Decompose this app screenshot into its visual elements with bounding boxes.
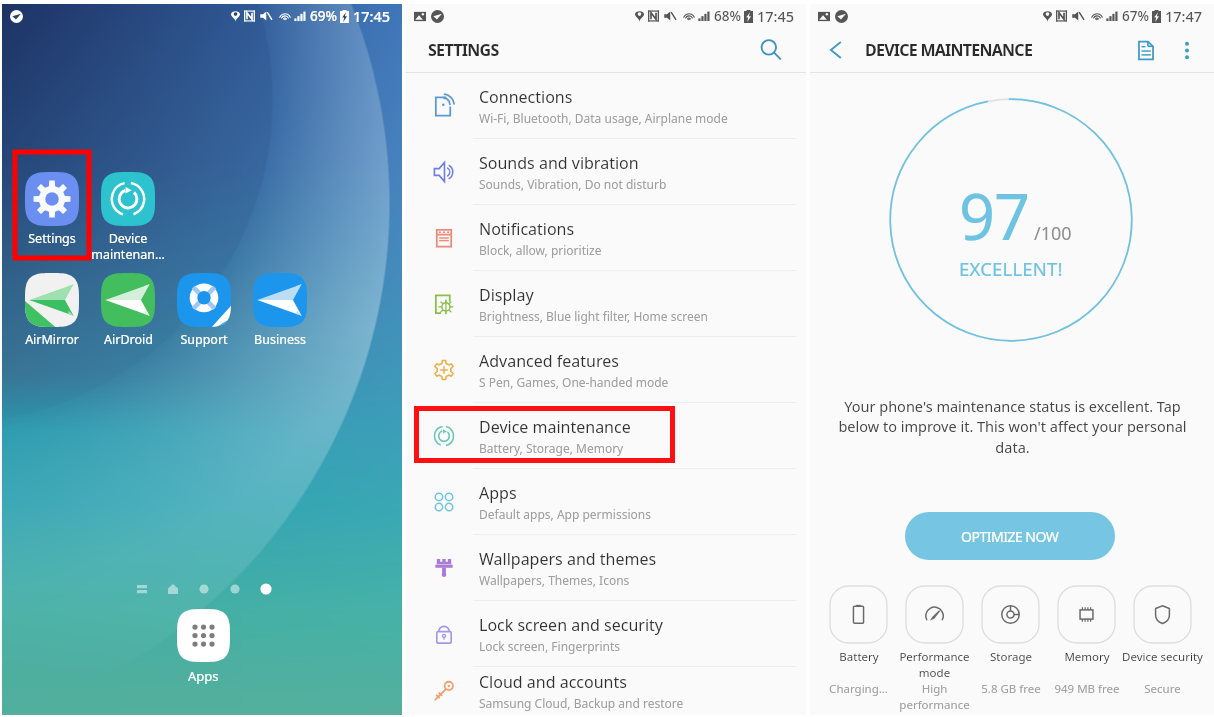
- staticText: 5.8 GB free: [981, 681, 1041, 697]
- staticText: 17:47: [1165, 6, 1203, 26]
- button[interactable]: Device security: [1121, 586, 1204, 697]
- staticText: Support: [180, 331, 228, 348]
- staticText: Notifications: [479, 218, 575, 240]
- button[interactable]: Storage: [969, 586, 1052, 697]
- button[interactable]: Apps: [177, 609, 230, 662]
- button[interactable]: Back: [819, 34, 851, 66]
- button[interactable]: Report: [1129, 33, 1163, 67]
- staticText: Battery: [839, 649, 879, 665]
- staticText: Wallpapers, Themes, Icons: [479, 572, 630, 588]
- button[interactable]: Connections: [406, 73, 806, 138]
- staticText: Battery, Storage, Memory: [479, 440, 624, 456]
- staticText: Wi-Fi, Bluetooth, Data usage, Airplane m…: [479, 110, 728, 126]
- staticText: Storage: [990, 649, 1032, 665]
- button[interactable]: Apps: [406, 469, 806, 534]
- button[interactable]: Battery: [817, 586, 900, 697]
- button[interactable]: Display: [406, 271, 806, 336]
- button[interactable]: OPTIMIZE NOW: [905, 512, 1115, 560]
- staticText: Sounds, Vibration, Do not disturb: [479, 176, 667, 192]
- staticText: Device maintenance: [479, 416, 631, 438]
- staticText: Business: [254, 331, 306, 348]
- button[interactable]: Device maintenan…: [90, 172, 166, 262]
- button[interactable]: Business: [242, 273, 318, 348]
- staticText: Cloud and accounts: [479, 671, 627, 693]
- button[interactable]: AirDroid: [90, 273, 166, 348]
- staticText: EXCELLENT!: [959, 256, 1063, 281]
- staticText: 68%: [714, 7, 741, 25]
- staticText: /100: [1034, 221, 1072, 246]
- staticText: 949 MB free: [1054, 681, 1120, 697]
- staticText: Brightness, Blue light filter, Home scre…: [479, 308, 708, 324]
- button[interactable]: Search: [754, 33, 788, 67]
- staticText: AirDroid: [104, 331, 153, 348]
- staticText: Lock screen, Fingerprints: [479, 638, 621, 654]
- button[interactable]: Performance mode: [893, 586, 976, 712]
- staticText: Device maintenan…: [91, 230, 165, 262]
- staticText: 69%: [310, 7, 337, 25]
- staticText: Performance mode: [899, 649, 970, 680]
- button[interactable]: More options: [1172, 35, 1202, 65]
- button[interactable]: Cloud and accounts: [406, 667, 806, 715]
- staticText: Advanced features: [479, 350, 619, 372]
- staticText: 17:45: [757, 6, 795, 26]
- staticText: Charging…: [829, 681, 888, 697]
- staticText: 97: [959, 173, 1030, 259]
- staticText: Secure: [1144, 681, 1181, 697]
- staticText: 17:45: [353, 6, 391, 26]
- button[interactable]: Notifications: [406, 205, 806, 270]
- staticText: AirMirror: [25, 331, 79, 348]
- button[interactable]: Advanced features: [406, 337, 806, 402]
- staticText: Memory: [1064, 649, 1110, 665]
- button[interactable]: Settings: [14, 172, 90, 247]
- staticText: Apps: [188, 667, 219, 685]
- staticText: Lock screen and security: [479, 614, 663, 636]
- staticText: Display: [479, 284, 534, 306]
- button[interactable]: Sounds and vibration: [406, 139, 806, 204]
- staticText: Block, allow, prioritize: [479, 242, 602, 258]
- staticText: Samsung Cloud, Backup and restore: [479, 695, 684, 711]
- staticText: 67%: [1122, 7, 1149, 25]
- staticText: OPTIMIZE NOW: [961, 527, 1059, 546]
- button[interactable]: Memory: [1045, 586, 1128, 697]
- staticText: DEVICE MAINTENANCE: [865, 39, 1033, 61]
- staticText: Settings: [28, 230, 76, 247]
- button[interactable]: Device maintenance: [406, 403, 806, 468]
- staticText: Default apps, App permissions: [479, 506, 651, 522]
- staticText: SETTINGS: [428, 39, 499, 61]
- staticText: Apps: [479, 482, 517, 504]
- staticText: Connections: [479, 86, 573, 108]
- button[interactable]: Lock screen and security: [406, 601, 806, 666]
- button[interactable]: AirMirror: [14, 273, 90, 348]
- button[interactable]: Wallpapers and themes: [406, 535, 806, 600]
- staticText: High performance: [899, 681, 970, 712]
- staticText: Your phone's maintenance status is excel…: [838, 396, 1187, 458]
- staticText: Device security: [1122, 649, 1203, 665]
- staticText: Wallpapers and themes: [479, 548, 657, 570]
- button[interactable]: Support: [166, 273, 242, 348]
- staticText: S Pen, Games, One-handed mode: [479, 374, 669, 390]
- staticText: Sounds and vibration: [479, 152, 639, 174]
